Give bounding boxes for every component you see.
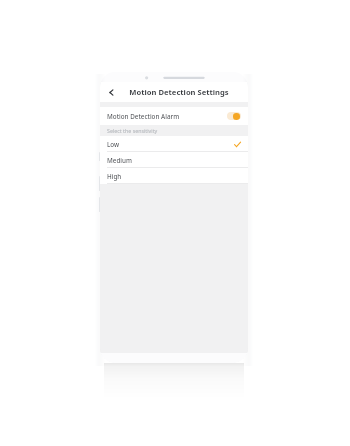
staticText: Medium [107,156,241,165]
staticText: Motion Detection Alarm [107,112,227,121]
button[interactable]: Motion Detection Alarm [100,107,248,125]
staticText: High [107,172,241,181]
staticText: Select the sensitivity [107,127,158,134]
button[interactable]: Medium [100,152,248,168]
button[interactable]: Motion Detection Alarm [227,112,241,120]
staticText: Low [107,140,234,149]
staticText: Motion Detection Settings [129,87,229,97]
button[interactable]: High [100,168,248,184]
button[interactable]: Back [104,85,118,99]
button[interactable]: Low [100,136,248,152]
